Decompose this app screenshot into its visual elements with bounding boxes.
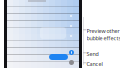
button[interactable]: Cancel xyxy=(69,60,74,65)
button[interactable]: Send xyxy=(69,50,74,55)
staticText: Preview other bubble effects xyxy=(86,27,120,42)
staticText: Send xyxy=(86,50,98,58)
staticText: Cancel xyxy=(86,60,102,68)
